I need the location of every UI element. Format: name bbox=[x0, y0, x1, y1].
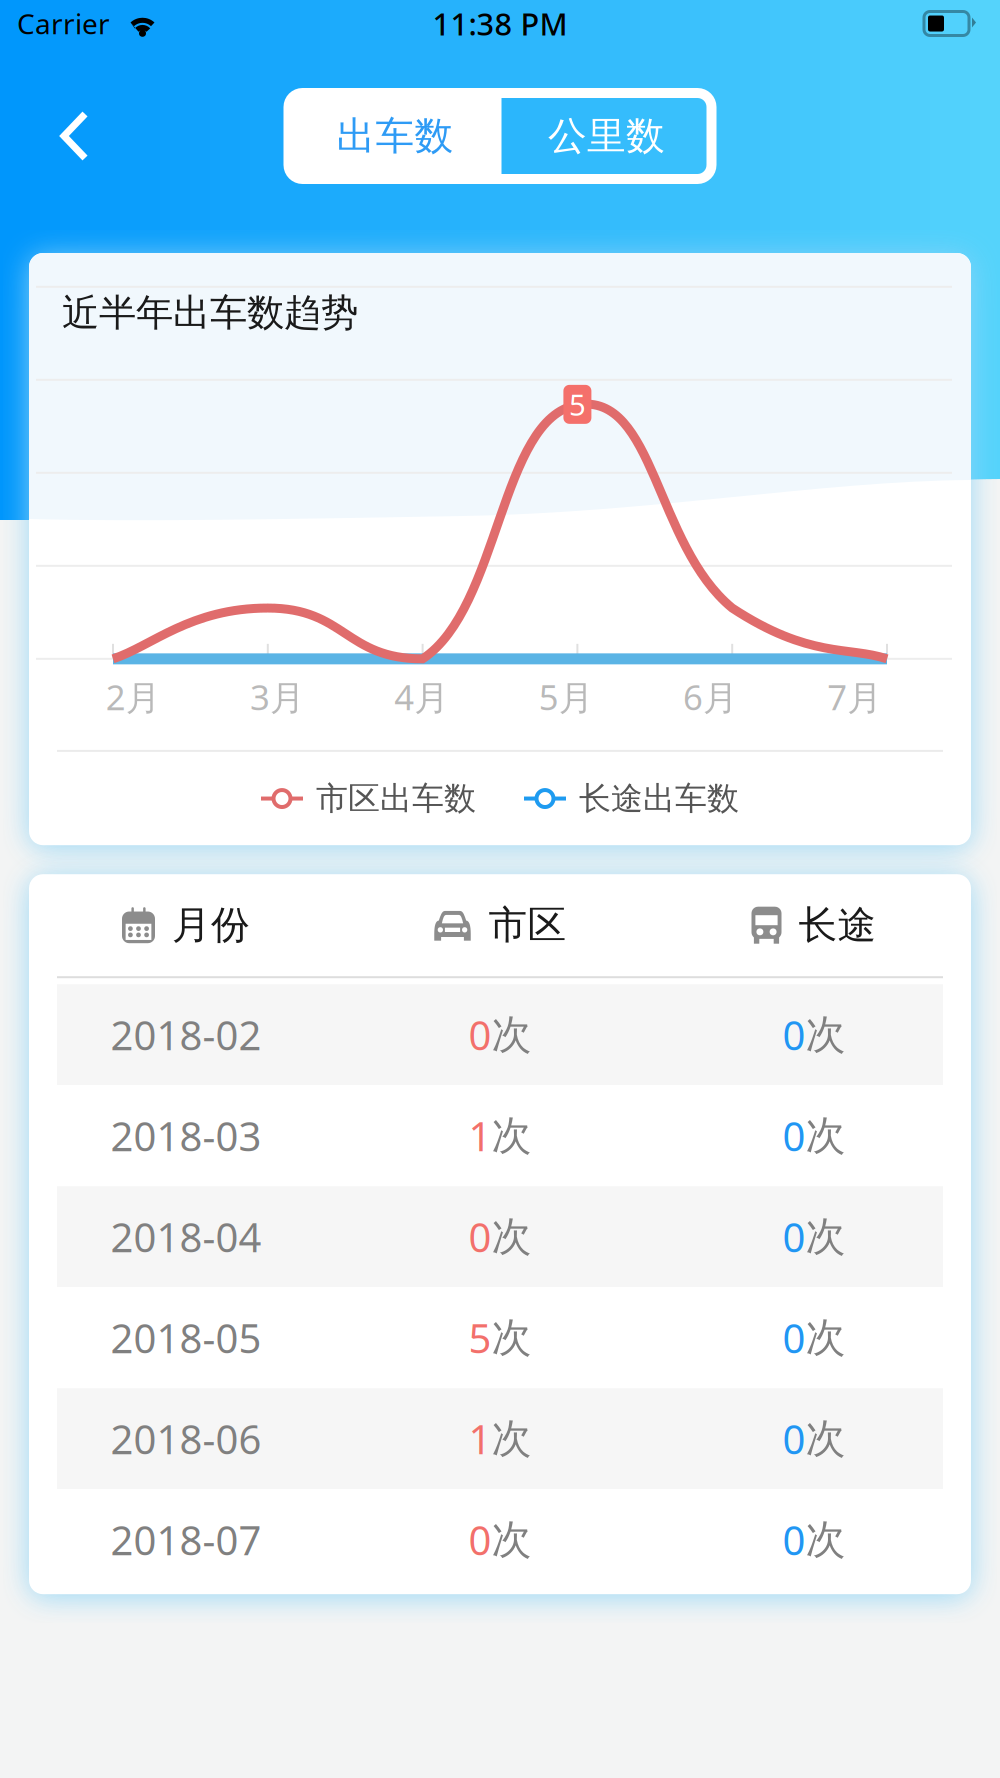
staticText: 2018-03 bbox=[110, 1109, 261, 1162]
staticText: 次 bbox=[491, 1313, 531, 1362]
staticText: 3月 bbox=[250, 674, 305, 720]
staticText: 月份 bbox=[172, 901, 250, 949]
staticText: 4月 bbox=[394, 674, 449, 720]
staticText: 5月 bbox=[539, 674, 594, 720]
staticText: 0 bbox=[782, 1311, 805, 1364]
staticText: Carrier bbox=[17, 5, 110, 42]
staticText: 0 bbox=[782, 1109, 805, 1162]
staticText: 2月 bbox=[106, 674, 161, 720]
staticText: 1 bbox=[468, 1109, 491, 1162]
staticText: 2018-02 bbox=[110, 1008, 261, 1061]
staticText: 0 bbox=[468, 1008, 491, 1061]
staticText: 次 bbox=[805, 1515, 845, 1564]
staticText: 次 bbox=[805, 1414, 845, 1463]
staticText: 次 bbox=[491, 1010, 531, 1059]
staticText: 0 bbox=[782, 1008, 805, 1061]
staticText: 近半年出车数趋势 bbox=[62, 290, 358, 336]
staticText: 6月 bbox=[683, 674, 738, 720]
staticText: 次 bbox=[805, 1010, 845, 1059]
staticText: 7月 bbox=[827, 674, 882, 720]
staticText: 0 bbox=[782, 1513, 805, 1566]
staticText: 0 bbox=[782, 1210, 805, 1263]
staticText: 出车数 bbox=[336, 112, 453, 160]
staticText: 1 bbox=[468, 1412, 491, 1465]
staticText: 5 bbox=[569, 385, 586, 424]
staticText: 0 bbox=[468, 1210, 491, 1263]
staticText: 次 bbox=[805, 1313, 845, 1362]
staticText: 0 bbox=[468, 1513, 491, 1566]
staticText: 市区 bbox=[488, 901, 566, 949]
staticText: 次 bbox=[805, 1111, 845, 1160]
button[interactable]: 公里数 bbox=[501, 93, 711, 179]
staticText: 长途出车数 bbox=[579, 779, 739, 818]
staticText: 5 bbox=[468, 1311, 491, 1364]
button[interactable]: 出车数 bbox=[288, 93, 501, 179]
staticText: 次 bbox=[491, 1515, 531, 1564]
staticText: 次 bbox=[491, 1111, 531, 1160]
staticText: 长途 bbox=[798, 901, 876, 949]
staticText: 次 bbox=[491, 1414, 531, 1463]
staticText: 0 bbox=[782, 1412, 805, 1465]
button[interactable]: Back bbox=[0, 88, 123, 184]
staticText: 次 bbox=[805, 1212, 845, 1261]
staticText: 2018-05 bbox=[110, 1311, 261, 1364]
staticText: 2018-06 bbox=[110, 1412, 261, 1465]
staticText: 2018-07 bbox=[110, 1513, 261, 1566]
staticText: 2018-04 bbox=[110, 1210, 261, 1263]
staticText: 市区出车数 bbox=[316, 779, 476, 818]
staticText: 次 bbox=[491, 1212, 531, 1261]
staticText: 11:38 PM bbox=[432, 3, 567, 44]
staticText: 公里数 bbox=[548, 112, 665, 160]
